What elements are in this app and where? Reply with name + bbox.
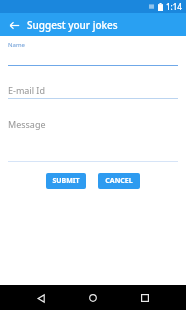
button[interactable]: SUBMIT (46, 173, 86, 189)
staticText: CANCEL (105, 176, 133, 186)
button[interactable]: Recents (134, 287, 156, 309)
button[interactable]: E-mail Id (0, 84, 186, 99)
button[interactable]: CANCEL (98, 173, 140, 189)
button[interactable]: Home (82, 287, 104, 309)
staticText: Message (8, 118, 46, 130)
staticText: E-mail Id (8, 84, 45, 96)
button[interactable]: Back (5, 16, 23, 34)
staticText: Name (8, 41, 25, 49)
button[interactable]: Back (30, 287, 52, 309)
staticText: SUBMIT (52, 176, 80, 186)
button[interactable]: Message (0, 118, 186, 162)
button[interactable]: Name (0, 39, 186, 66)
staticText: Suggest your jokes (27, 18, 118, 32)
staticText: 1:14 (166, 1, 182, 12)
